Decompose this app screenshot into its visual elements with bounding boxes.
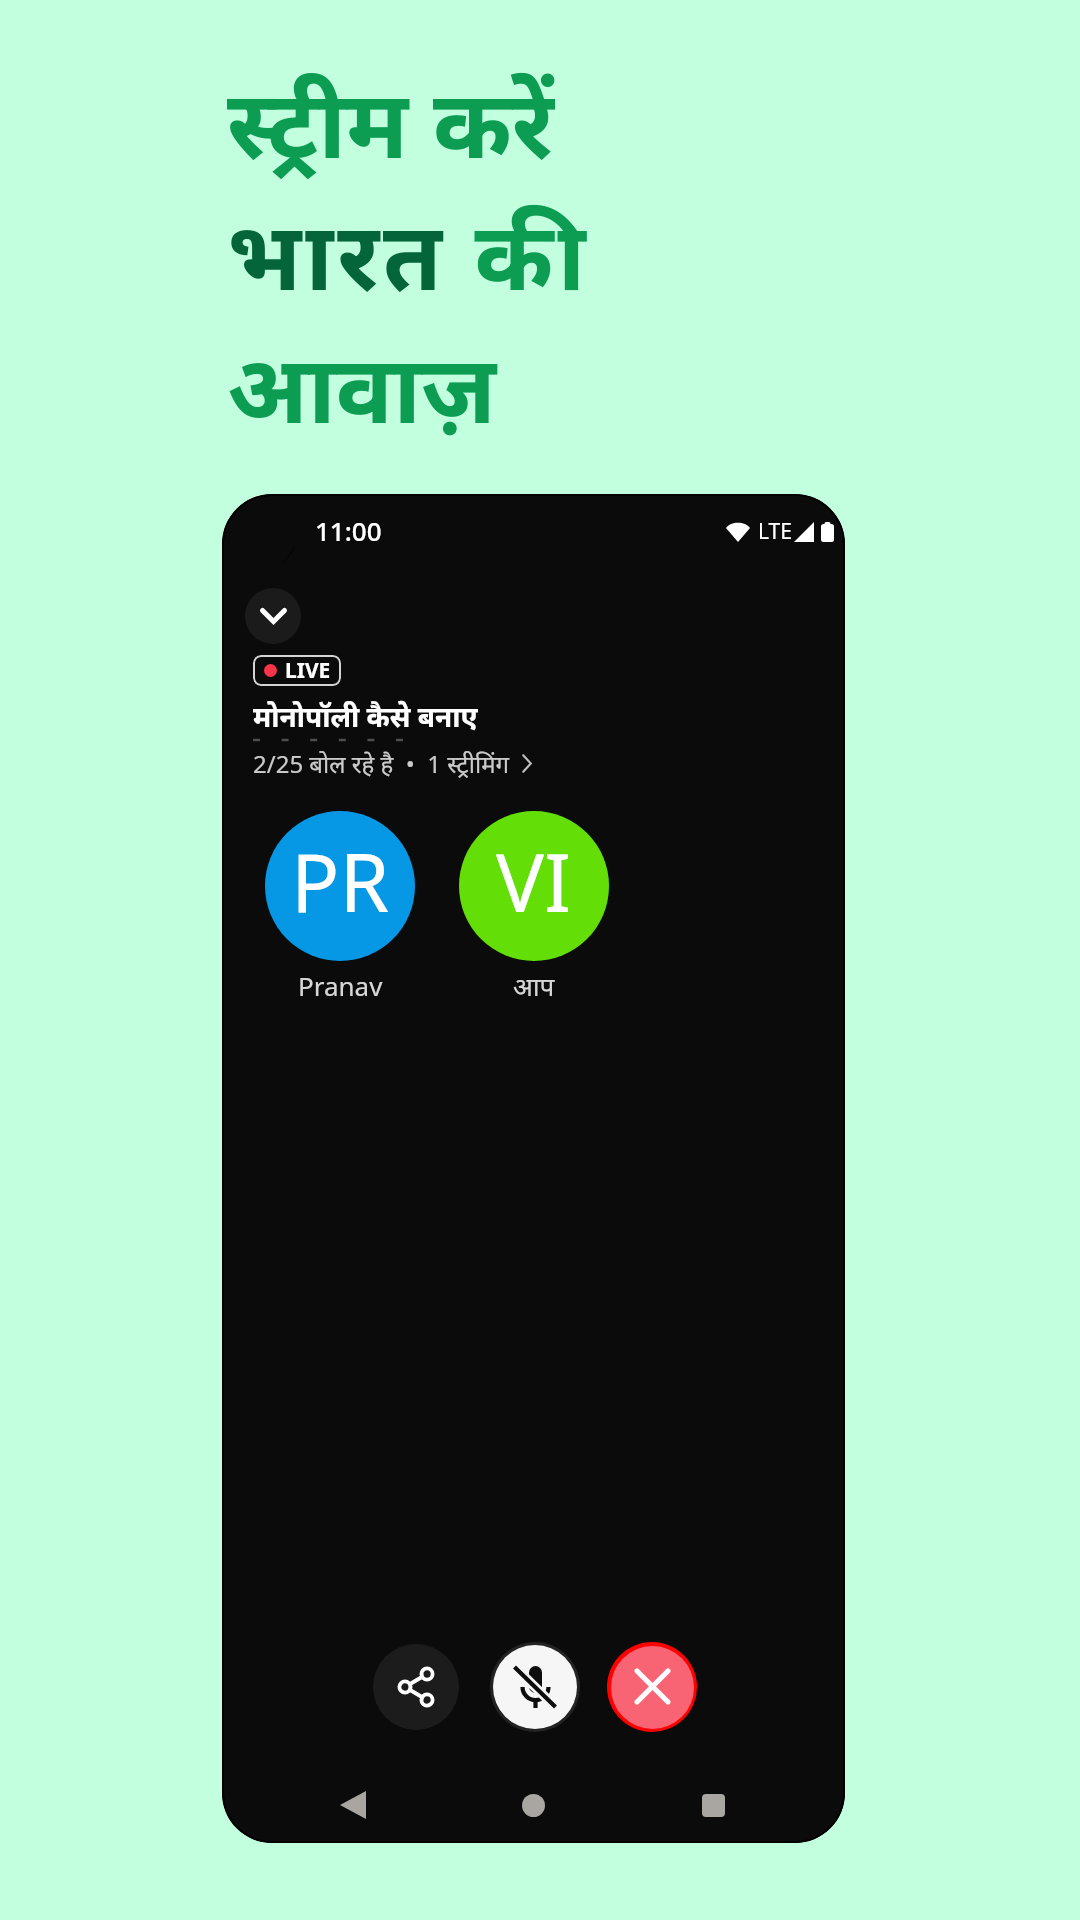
staticText: आप	[513, 968, 555, 1003]
button[interactable]: VI	[459, 811, 609, 1003]
staticText: आवाज़	[227, 321, 496, 450]
button[interactable]: 2/25 बोल रहे है • 1 स्ट्रीमिंग	[253, 747, 532, 780]
button[interactable]: Unmute microphone	[490, 1642, 580, 1732]
button[interactable]: PR	[265, 811, 415, 1003]
button[interactable]: Share	[373, 1644, 459, 1730]
staticText: भारत की	[227, 188, 590, 317]
staticText: LIVE	[285, 656, 331, 685]
button[interactable]: LIVE	[253, 655, 341, 686]
staticText: VI	[496, 826, 572, 935]
staticText: LTE	[758, 517, 792, 546]
staticText: 2/25 बोल रहे है • 1 स्ट्रीमिंग	[253, 747, 510, 780]
staticText: मोनोपॉली कैसे बनाए	[253, 697, 478, 735]
staticText: PR	[291, 826, 390, 935]
button[interactable]: Home	[509, 1781, 557, 1829]
button[interactable]: End call	[607, 1642, 697, 1732]
staticText: 11:00	[315, 513, 382, 548]
staticText: स्ट्रीम करें	[227, 56, 554, 185]
button[interactable]: Collapse	[245, 588, 301, 644]
button[interactable]: Recent apps	[689, 1781, 737, 1829]
staticText: Pranav	[298, 968, 383, 1003]
button[interactable]: Back	[329, 1781, 377, 1829]
